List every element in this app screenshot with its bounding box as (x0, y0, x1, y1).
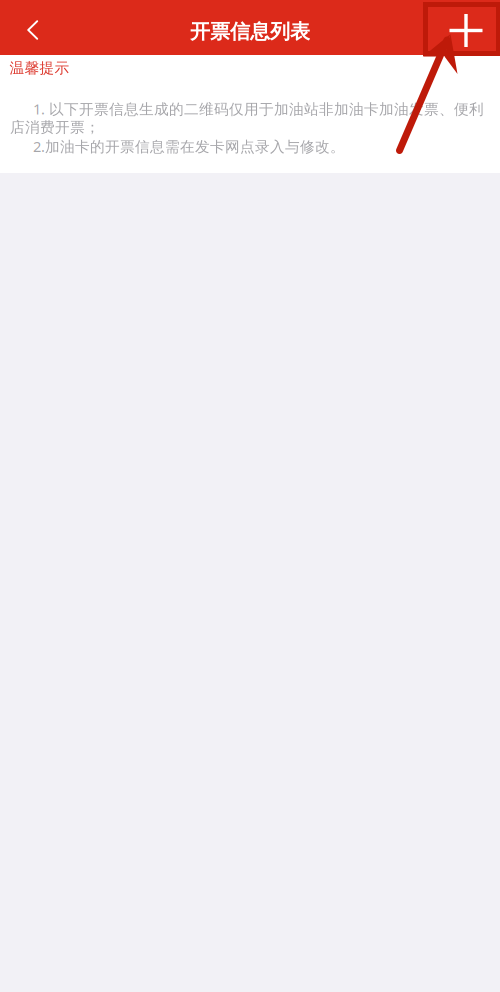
staticText: 1. 以下开票信息生成的二维码仅用于加油站非加油卡加油发票、便利店消费开票； 2… (10, 99, 484, 156)
staticText: 温馨提示 (9, 59, 69, 77)
button[interactable]: Add invoice information (432, 0, 500, 55)
staticText: 开票信息列表 (190, 19, 310, 44)
button[interactable]: Back (0, 0, 60, 55)
